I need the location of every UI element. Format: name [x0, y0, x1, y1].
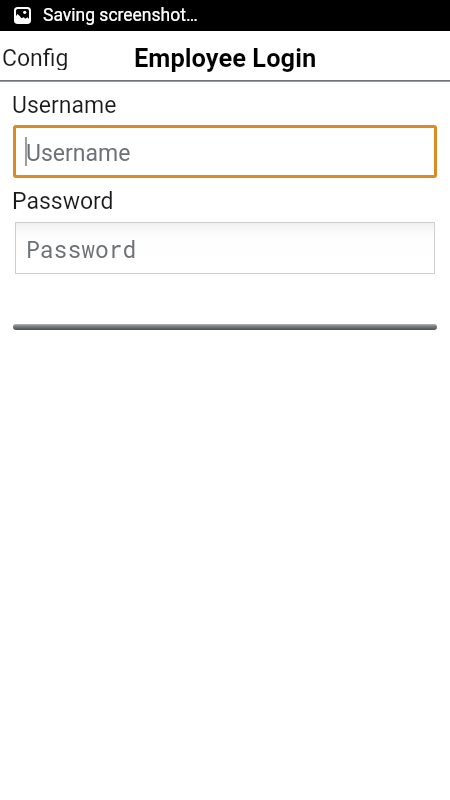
staticText: Password [12, 188, 114, 215]
staticText: Saving screenshot… [43, 5, 198, 26]
button[interactable]: Username input [13, 125, 437, 178]
button[interactable]: Password input [15, 222, 435, 274]
staticText: Password [26, 234, 137, 264]
button[interactable]: Login [13, 324, 437, 330]
button[interactable]: Config [0, 33, 81, 82]
staticText: Username [26, 140, 131, 167]
staticText: Employee Login [134, 43, 317, 73]
staticText: Config [2, 45, 69, 70]
staticText: Username [12, 92, 117, 119]
other: Screenshot [14, 7, 31, 24]
